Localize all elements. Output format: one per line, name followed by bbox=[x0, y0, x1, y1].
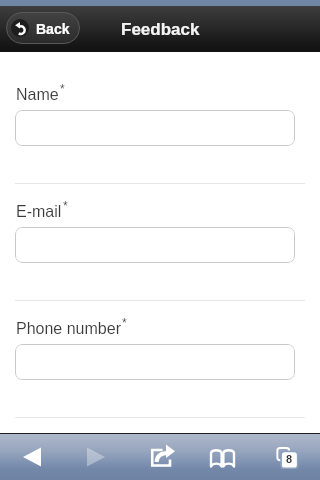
staticText: Feedback bbox=[121, 20, 200, 39]
staticText: * bbox=[63, 199, 68, 212]
button[interactable] bbox=[15, 227, 295, 263]
button[interactable]: Bookmarks bbox=[192, 434, 256, 480]
staticText: Phone number bbox=[16, 320, 121, 338]
button[interactable]: Back bbox=[6, 12, 80, 44]
button[interactable] bbox=[15, 344, 295, 380]
staticText: * bbox=[122, 316, 127, 329]
staticText: Name bbox=[16, 86, 59, 104]
button[interactable]: Share bbox=[128, 434, 192, 480]
staticText: E-mail bbox=[16, 203, 62, 221]
button[interactable] bbox=[15, 110, 295, 146]
button[interactable]: Tabs bbox=[256, 434, 320, 480]
staticText: 8 bbox=[286, 453, 293, 465]
staticText: Back bbox=[36, 21, 70, 37]
staticText: * bbox=[60, 82, 65, 95]
button[interactable]: Forward bbox=[64, 434, 128, 480]
button[interactable]: Back bbox=[0, 434, 64, 480]
